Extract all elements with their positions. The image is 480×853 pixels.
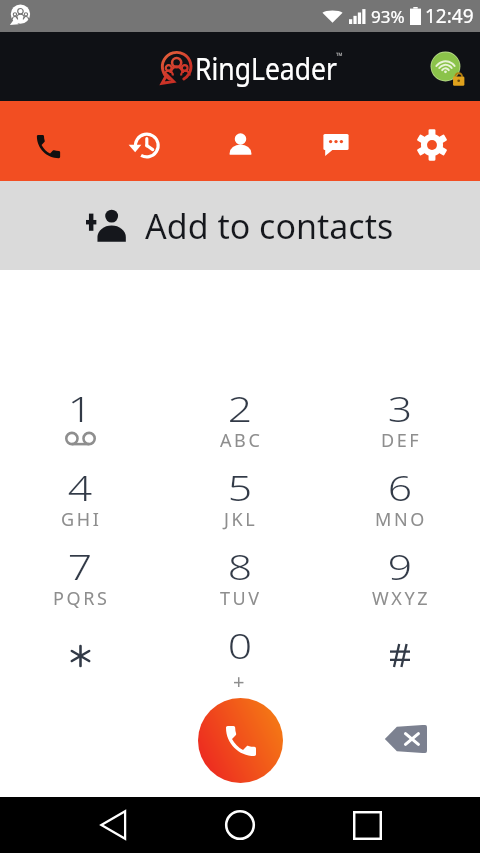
staticText: 4 [68,464,92,512]
staticText: 12:49 [425,3,474,29]
button[interactable]: 3 [320,383,480,462]
staticText: 8 [228,543,252,591]
staticText: 9 [388,543,412,591]
button[interactable]: 1 [0,383,160,462]
staticText: RingLeader [195,47,337,89]
button[interactable]: Messages [288,101,384,181]
staticText: PQRS [53,586,110,611]
button[interactable]: Call [198,698,283,783]
button[interactable]: 5 [160,462,320,541]
button[interactable]: Settings [384,101,480,181]
button[interactable]: 0 [160,620,320,699]
staticText: 6 [388,464,412,512]
staticText: TUV [220,586,262,611]
button[interactable]: Back [83,797,143,853]
button[interactable]: Home [210,797,270,853]
button[interactable] [0,620,160,699]
button[interactable]: Add to contacts [0,181,480,270]
staticText: JKL [224,507,258,532]
button[interactable]: Contacts [192,101,288,181]
staticText: 1 [68,385,92,433]
staticText: Add to contacts [145,203,394,249]
staticText: MNO [375,507,427,532]
staticText: 7 [68,543,92,591]
button[interactable]: 6 [320,462,480,541]
staticText: ABC [220,428,263,453]
button[interactable]: 2 [160,383,320,462]
button[interactable]: Recent apps [337,797,397,853]
button[interactable]: Secure WiFi connection [427,48,469,90]
staticText: 2 [228,385,252,433]
staticText: DEF [381,428,422,453]
button[interactable]: Backspace [379,713,431,765]
staticText: + [233,668,248,695]
button[interactable]: 8 [160,541,320,620]
staticText: 3 [388,385,412,433]
staticText: GHI [61,507,102,532]
staticText: 93% [371,5,405,28]
staticText: WXYZ [372,586,431,611]
button[interactable]: Recents [96,101,192,181]
button[interactable]: Dialpad [0,101,96,181]
button[interactable]: 4 [0,462,160,541]
staticText: ™ [336,49,343,61]
staticText: 0 [228,622,252,670]
button[interactable]: 9 [320,541,480,620]
staticText: 5 [228,464,252,512]
button[interactable] [320,620,480,699]
button[interactable]: 7 [0,541,160,620]
